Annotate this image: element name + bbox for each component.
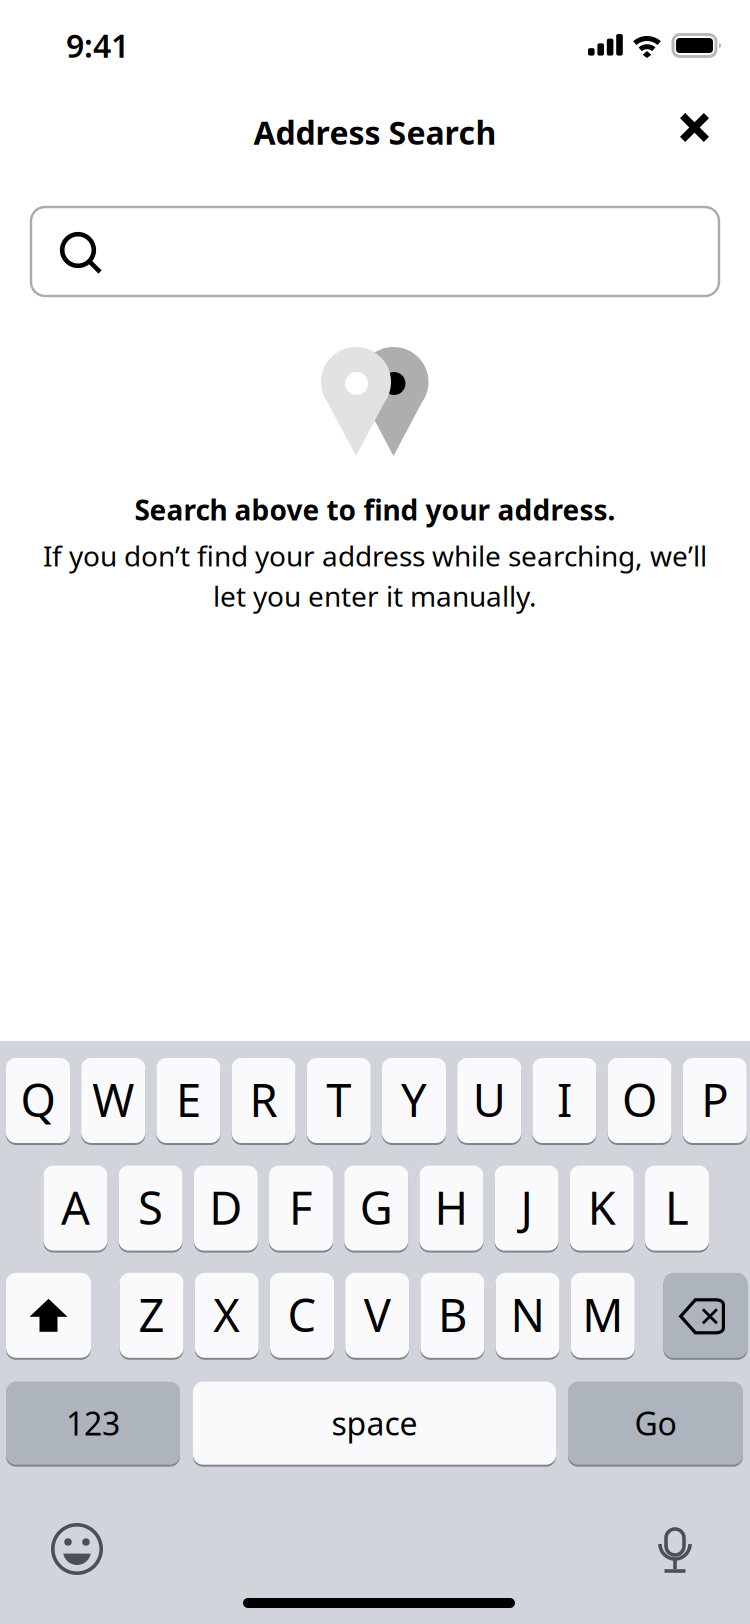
button[interactable]: F xyxy=(269,1166,333,1253)
button[interactable]: V xyxy=(345,1273,409,1360)
staticText: Q xyxy=(20,1069,55,1130)
button[interactable]: Dictate xyxy=(656,1519,694,1579)
button[interactable]: S xyxy=(119,1166,183,1253)
button[interactable]: E xyxy=(156,1058,220,1145)
staticText: Go xyxy=(634,1402,676,1444)
staticText: let you enter it manually. xyxy=(213,577,537,614)
button[interactable]: X xyxy=(195,1273,259,1360)
button[interactable]: Q xyxy=(6,1058,70,1145)
staticText: space xyxy=(331,1402,417,1444)
staticText: M xyxy=(582,1284,623,1344)
staticText: Search above to find your address. xyxy=(134,491,615,528)
staticText: U xyxy=(473,1069,506,1130)
staticText: C xyxy=(287,1284,316,1344)
button[interactable]: space xyxy=(193,1382,556,1467)
staticText: B xyxy=(438,1284,467,1344)
button[interactable]: R xyxy=(232,1058,296,1145)
staticText: Address Search xyxy=(253,111,496,153)
button[interactable]: Y xyxy=(382,1058,446,1145)
button[interactable]: Shift xyxy=(6,1273,91,1360)
staticText: Z xyxy=(139,1284,165,1344)
button[interactable]: M xyxy=(571,1273,635,1360)
staticText: 123 xyxy=(66,1402,120,1444)
button[interactable]: L xyxy=(645,1166,709,1253)
staticText: L xyxy=(665,1177,689,1237)
staticText: A xyxy=(61,1177,90,1237)
button[interactable]: U xyxy=(457,1058,521,1145)
staticText: K xyxy=(588,1177,616,1237)
button[interactable]: K xyxy=(570,1166,634,1253)
button[interactable]: O xyxy=(608,1058,672,1145)
button[interactable]: B xyxy=(420,1273,484,1360)
button[interactable]: G xyxy=(344,1166,408,1253)
button[interactable]: W xyxy=(81,1058,145,1145)
button[interactable]: N xyxy=(496,1273,560,1360)
button[interactable]: A xyxy=(43,1166,107,1253)
staticText: O xyxy=(622,1069,657,1130)
button[interactable]: 123 xyxy=(6,1382,180,1467)
button[interactable]: Search address xyxy=(31,207,719,296)
staticText: Y xyxy=(401,1069,427,1130)
staticText: D xyxy=(209,1177,242,1237)
button[interactable]: Z xyxy=(120,1273,184,1360)
button[interactable]: P xyxy=(683,1058,747,1145)
button[interactable]: I xyxy=(532,1058,596,1145)
staticText: R xyxy=(250,1069,278,1130)
staticText: F xyxy=(289,1177,313,1237)
button[interactable]: T xyxy=(307,1058,371,1145)
staticText: 9:41 xyxy=(66,24,129,66)
staticText: T xyxy=(326,1069,351,1130)
staticText: G xyxy=(360,1177,393,1237)
button[interactable]: D xyxy=(194,1166,258,1253)
staticText: J xyxy=(521,1177,533,1237)
button[interactable]: C xyxy=(270,1273,334,1360)
staticText: X xyxy=(213,1284,240,1344)
staticText: E xyxy=(176,1069,201,1130)
button[interactable]: Emoji keyboard xyxy=(50,1522,104,1576)
staticText: N xyxy=(511,1284,545,1344)
staticText: H xyxy=(434,1177,468,1237)
staticText: S xyxy=(138,1177,163,1237)
staticText: W xyxy=(92,1069,134,1130)
staticText: P xyxy=(701,1069,728,1130)
button[interactable]: J xyxy=(495,1166,559,1253)
button[interactable]: Close xyxy=(666,99,723,156)
button[interactable]: H xyxy=(419,1166,483,1253)
button[interactable]: Delete xyxy=(663,1273,747,1360)
button[interactable]: Go xyxy=(568,1382,743,1467)
staticText: V xyxy=(364,1284,391,1344)
staticText: If you don’t find your address while sea… xyxy=(43,537,707,574)
staticText: I xyxy=(557,1069,572,1130)
